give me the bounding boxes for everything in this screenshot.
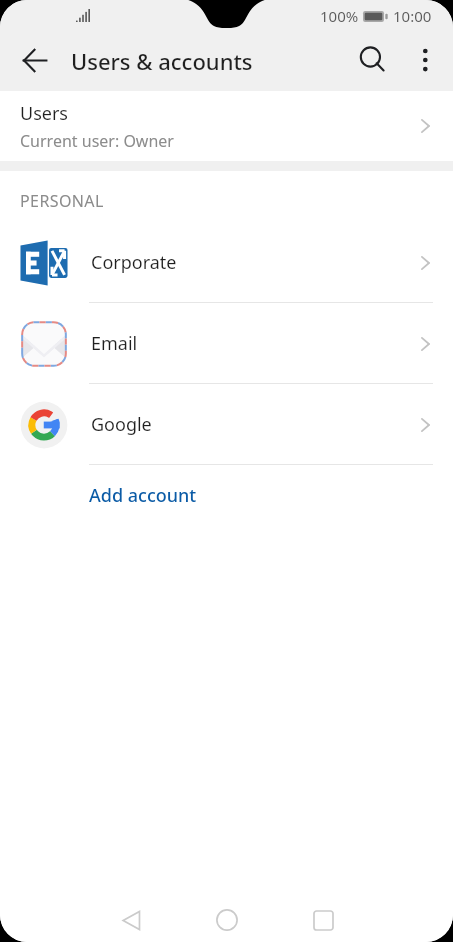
staticText: Add account: [89, 483, 197, 508]
staticText: Email: [91, 331, 414, 356]
staticText: Users & accounts: [71, 46, 253, 76]
staticText: 100%: [320, 6, 359, 26]
button[interactable]: More options: [401, 36, 449, 84]
button[interactable]: Navigate up: [11, 36, 59, 84]
staticText: Corporate: [91, 250, 414, 275]
button[interactable]: Users: [0, 91, 453, 161]
button[interactable]: Recent apps: [295, 892, 351, 942]
button[interactable]: Add account: [0, 465, 453, 526]
button[interactable]: Home: [199, 892, 255, 942]
button[interactable]: Search: [349, 36, 397, 84]
button[interactable]: Back: [103, 892, 159, 942]
staticText: Google: [91, 412, 414, 437]
button[interactable]: Google: [0, 384, 453, 465]
staticText: Current user: Owner: [20, 130, 174, 152]
staticText: Users: [20, 101, 68, 126]
staticText: PERSONAL: [20, 190, 104, 212]
staticText: 10:00: [393, 6, 432, 26]
button[interactable]: Email: [0, 303, 453, 384]
button[interactable]: Corporate: [0, 222, 453, 303]
